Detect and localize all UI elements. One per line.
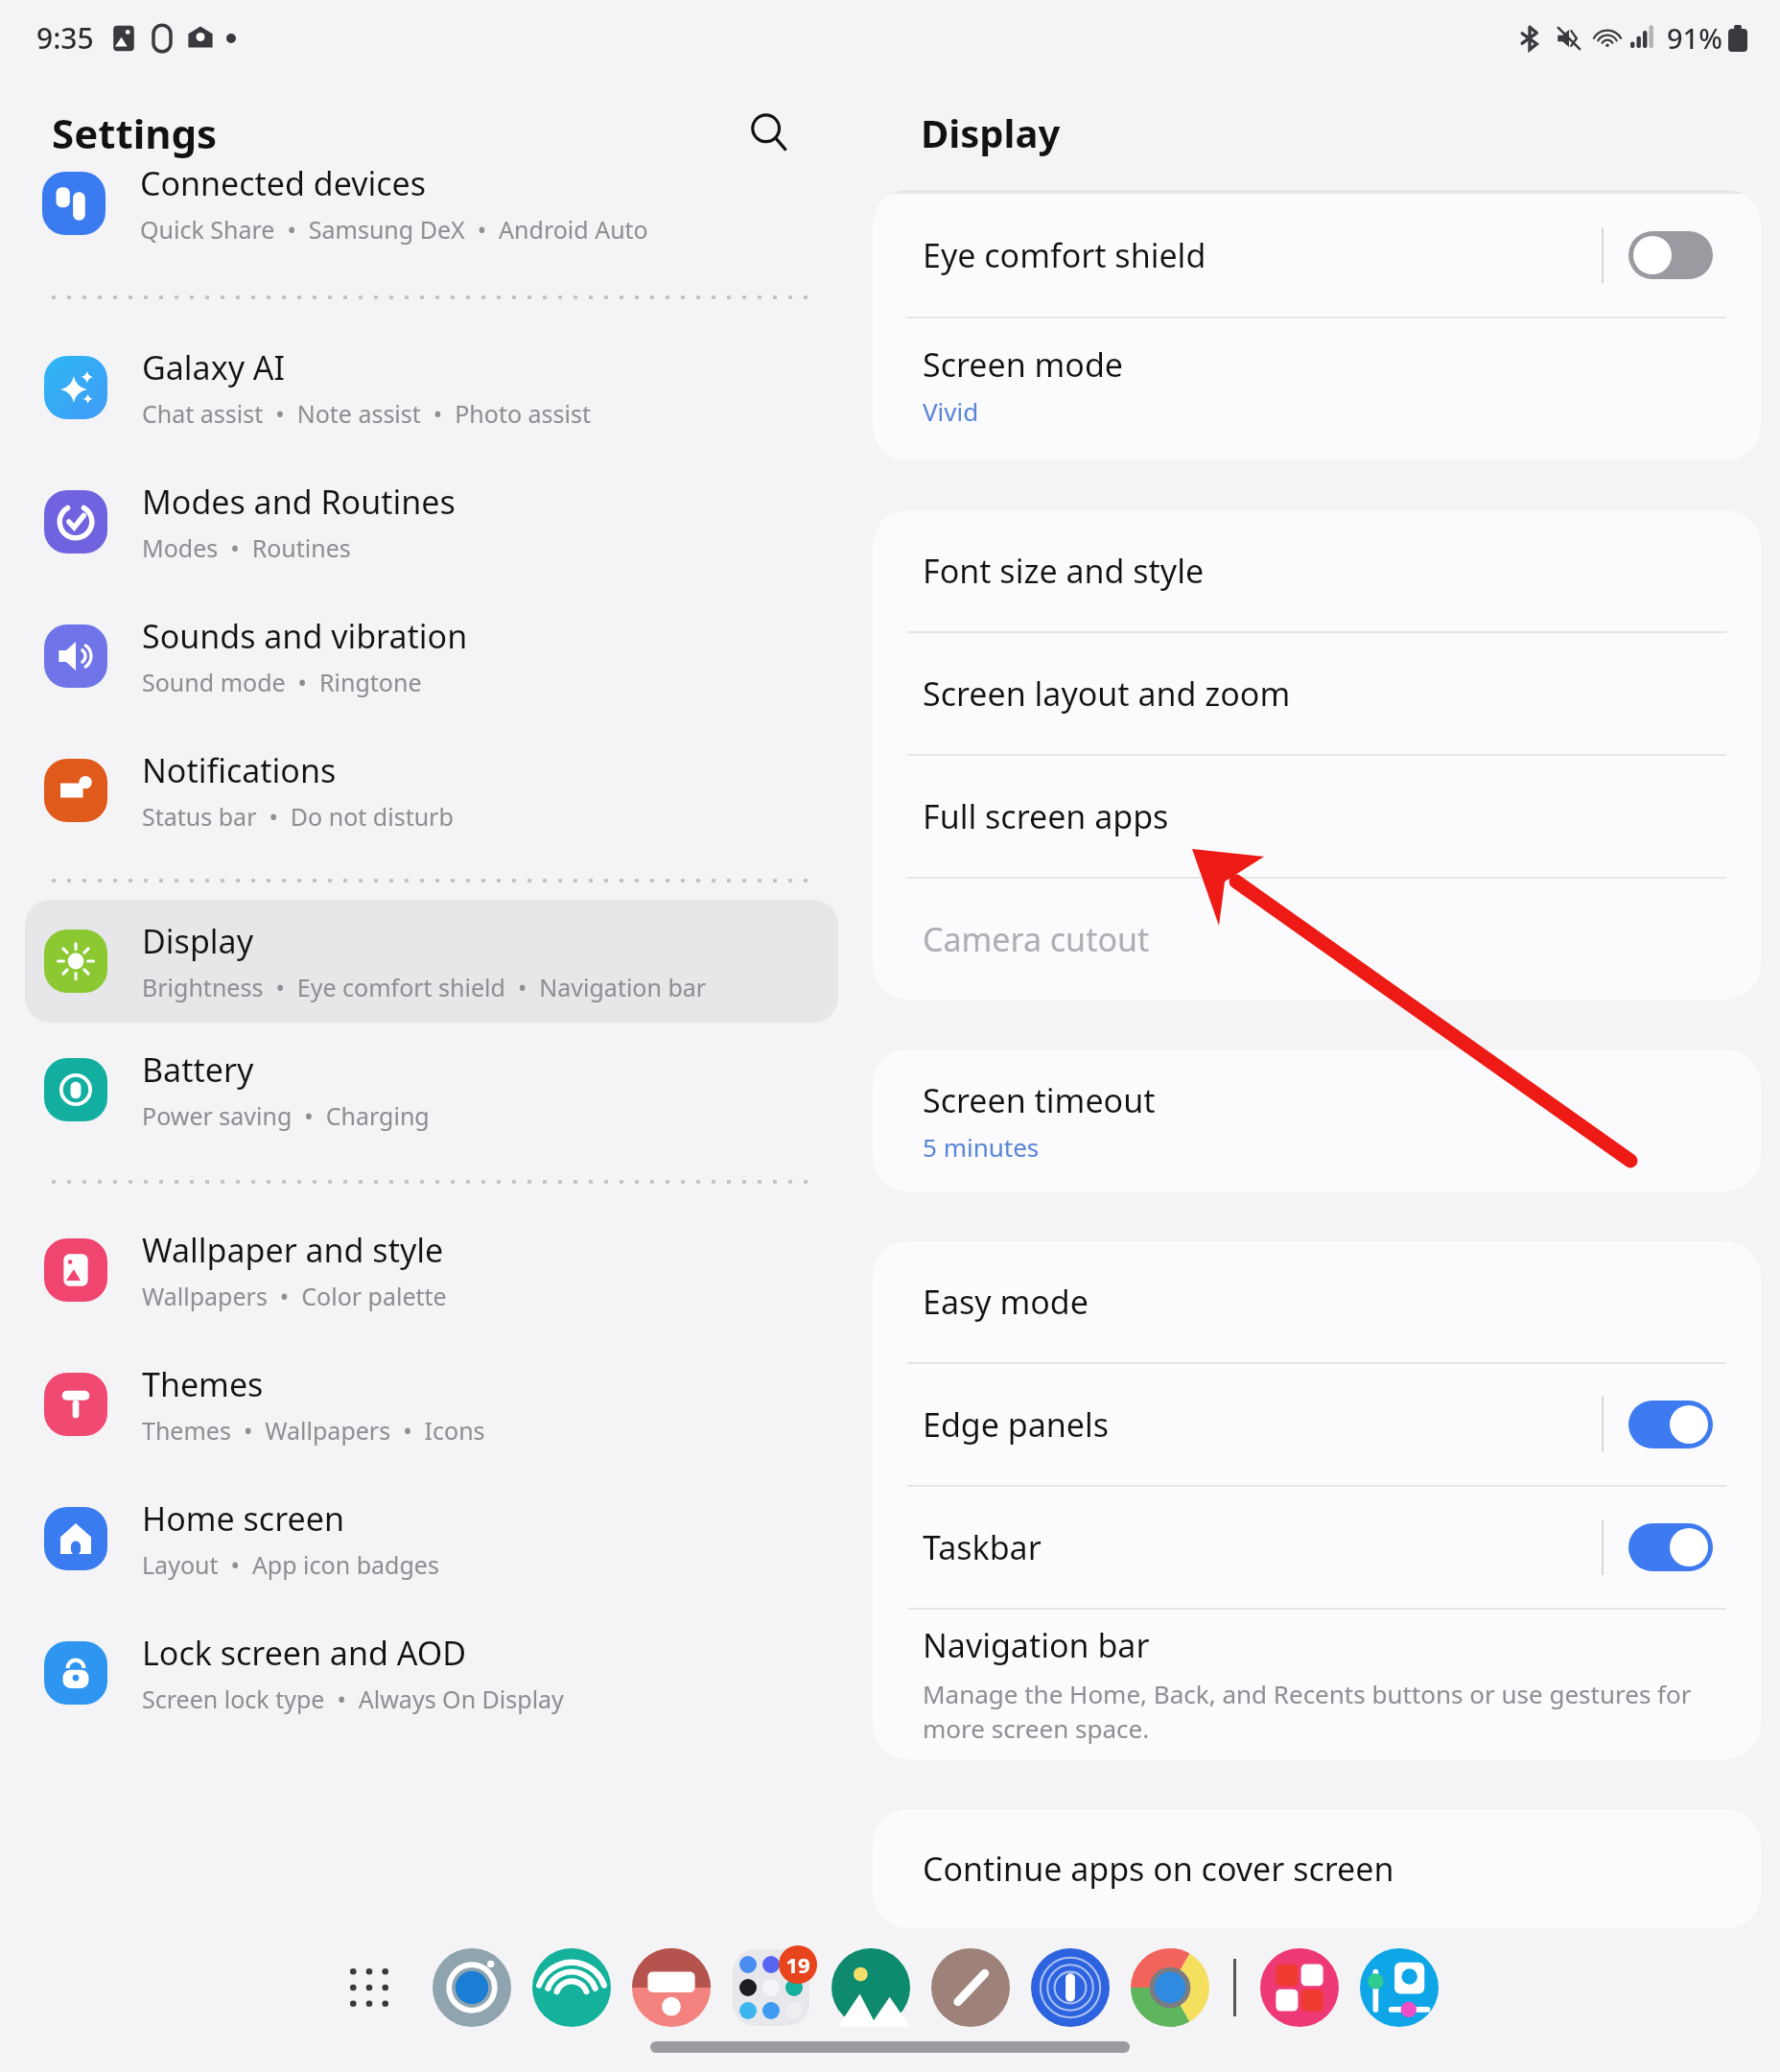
button[interactable]: Sounds and vibration [25, 589, 838, 723]
staticText: Full screen apps [923, 794, 1169, 838]
staticText: Taskbar [923, 1525, 1042, 1569]
staticText: 19 [785, 1950, 810, 1979]
staticText: Wallpaper and style [142, 1228, 444, 1272]
button[interactable]: Eye comfort shield [873, 194, 1761, 317]
staticText: Brightness • Eye comfort shield • Naviga… [142, 971, 707, 1003]
button[interactable]: Notes [921, 1938, 1020, 2037]
staticText: Wallpapers • Color palette [142, 1280, 447, 1312]
staticText: Continue apps on cover screen [923, 1847, 1394, 1891]
staticText: Themes • Wallpapers • Icons [142, 1414, 485, 1447]
button[interactable]: All apps [332, 1950, 407, 2025]
button[interactable]: Screen mode [873, 318, 1761, 451]
staticText: Vivid [923, 394, 979, 428]
staticText: Sounds and vibration [142, 614, 468, 658]
staticText: Camera cutout [923, 917, 1150, 961]
staticText: Battery [142, 1048, 254, 1092]
button[interactable]: Toggle on [1628, 1523, 1713, 1571]
staticText: Lock screen and AOD [142, 1631, 467, 1675]
staticText: Display [142, 919, 253, 963]
button[interactable]: Gallery [821, 1938, 921, 2037]
button[interactable]: Themes [25, 1337, 838, 1472]
staticText: Status bar • Do not disturb [142, 800, 454, 833]
staticText: Edge panels [923, 1402, 1109, 1447]
button[interactable]: Screen timeout [873, 1049, 1761, 1191]
staticText: Power saving • Charging [142, 1099, 430, 1132]
button[interactable]: Taskbar [873, 1487, 1761, 1608]
staticText: Chat assist • Note assist • Photo assist [142, 397, 591, 430]
button[interactable]: Full screen apps [873, 756, 1761, 877]
staticText: Layout • App icon badges [142, 1548, 439, 1581]
staticText: Screen timeout [923, 1078, 1156, 1122]
staticText: Font size and style [923, 549, 1205, 593]
staticText: Themes [142, 1362, 264, 1406]
button[interactable]: Lock screen and AOD [25, 1606, 838, 1740]
button[interactable]: Chrome [1120, 1938, 1220, 2037]
button[interactable]: Wallpaper and style [25, 1203, 838, 1337]
button[interactable]: Font size and style [873, 510, 1761, 631]
button[interactable]: camera [422, 1938, 522, 2037]
staticText: Notifications [142, 748, 337, 792]
staticText: 9:35 [36, 18, 94, 58]
button[interactable]: Edge panels [873, 1364, 1761, 1485]
staticText: Display [921, 106, 1061, 158]
button[interactable]: Tools [1349, 1938, 1449, 2037]
button[interactable]: Toggle off [1628, 231, 1713, 279]
staticText: 5 minutes [923, 1130, 1040, 1164]
button[interactable]: Easy mode [873, 1241, 1761, 1362]
staticText: Home screen [142, 1496, 344, 1541]
button[interactable]: 1Password [1020, 1938, 1120, 2037]
staticText: Screen lock type • Always On Display [142, 1683, 564, 1715]
staticText: Connected devices [140, 161, 427, 205]
button[interactable]: Continue apps on cover screen [873, 1809, 1761, 1928]
button[interactable]: Screen layout and zoom [873, 633, 1761, 754]
staticText: Screen mode [923, 342, 1123, 387]
button[interactable]: Display [25, 900, 838, 1023]
button[interactable]: Toggle on [1628, 1401, 1713, 1448]
button[interactable]: Battery [25, 1023, 838, 1157]
staticText: Sound mode • Ringtone [142, 666, 422, 698]
button[interactable]: Gmail [621, 1938, 721, 2037]
button[interactable]: Search [735, 98, 804, 167]
staticText: Easy mode [923, 1280, 1089, 1324]
staticText: Screen layout and zoom [923, 671, 1291, 716]
button[interactable]: Modes and Routines [25, 455, 838, 589]
staticText: Manage the Home, Back, and Recents butto… [923, 1677, 1742, 1746]
staticText: Modes • Routines [142, 531, 351, 564]
button[interactable]: Navigation bar [873, 1610, 1761, 1759]
staticText: 91% [1667, 19, 1722, 57]
button[interactable]: Puzzle app [1250, 1938, 1349, 2037]
staticText: Eye comfort shield [923, 233, 1206, 277]
button[interactable]: Camera cutout [873, 879, 1761, 1000]
button[interactable]: Galaxy AI [25, 320, 838, 455]
button[interactable]: App folder, 19 notifications [721, 1938, 821, 2037]
button[interactable]: Connected devices [0, 190, 863, 295]
button[interactable]: Spotify [522, 1938, 621, 2037]
staticText: Galaxy AI [142, 345, 286, 389]
staticText: Modes and Routines [142, 480, 456, 524]
staticText: Settings [52, 106, 218, 160]
button[interactable]: Home screen [25, 1472, 838, 1606]
staticText: Navigation bar [923, 1623, 1150, 1667]
button[interactable]: Notifications [25, 723, 838, 858]
staticText: Quick Share • Samsung DeX • Android Auto [140, 213, 648, 246]
